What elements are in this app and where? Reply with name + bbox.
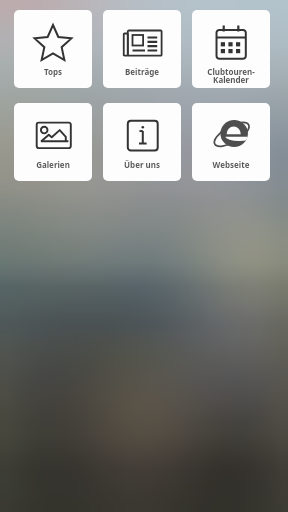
button[interactable]: Webseite	[192, 103, 270, 181]
button[interactable]: Über uns	[103, 103, 181, 181]
button[interactable]: Clubtouren- Kalender	[192, 10, 270, 88]
button[interactable]: Galerien	[14, 103, 92, 181]
staticText: Galerien	[14, 159, 92, 170]
staticText: Webseite	[192, 159, 270, 170]
staticText: Beiträge	[103, 66, 181, 77]
button[interactable]: Tops	[14, 10, 92, 88]
button[interactable]: Beiträge	[103, 10, 181, 88]
staticText: Über uns	[103, 159, 181, 170]
staticText: Tops	[14, 66, 92, 77]
staticText: Clubtouren- Kalender	[192, 66, 270, 85]
